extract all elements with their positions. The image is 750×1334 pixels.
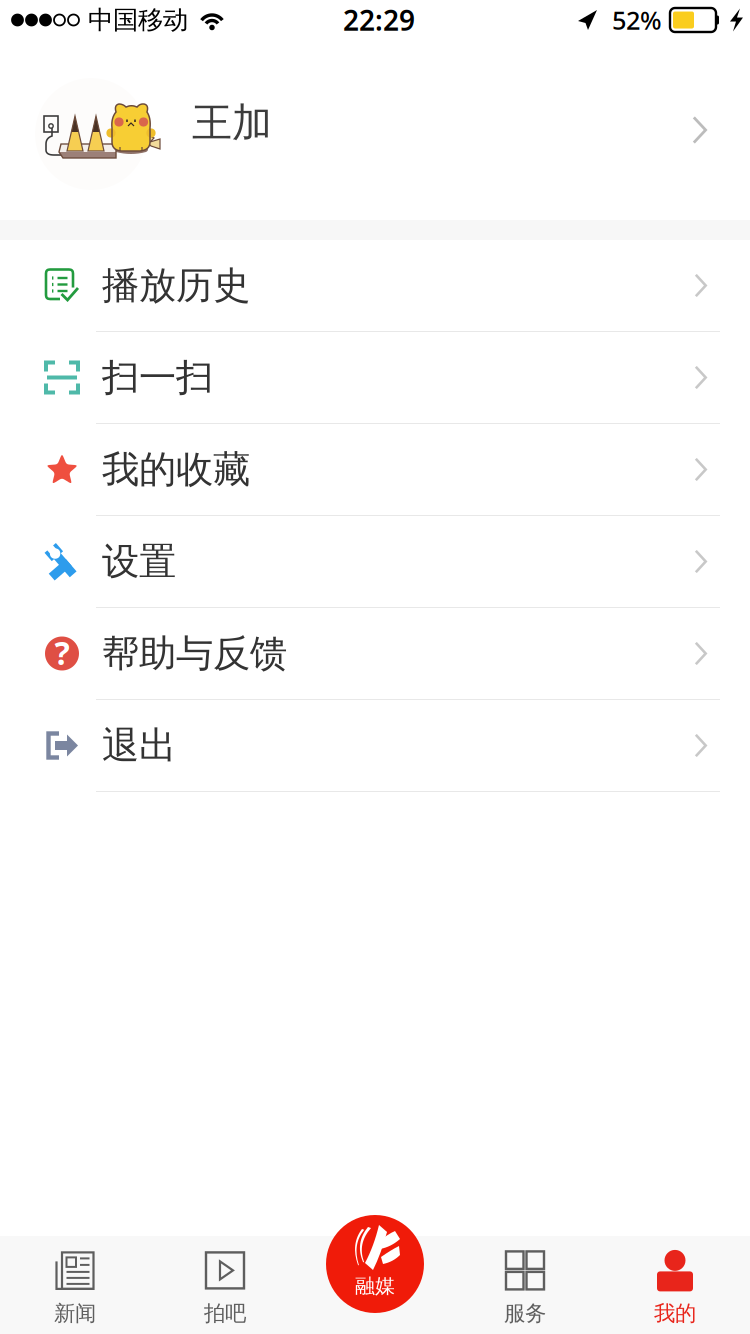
- staticText: 扫一扫: [102, 355, 213, 400]
- staticText: 王加: [192, 98, 272, 147]
- staticText: 融媒: [355, 1274, 395, 1298]
- button[interactable]: 新闻: [0, 1236, 150, 1334]
- button[interactable]: 退出: [0, 700, 750, 792]
- staticText: 中国移动: [88, 4, 188, 35]
- staticText: 设置: [102, 539, 176, 584]
- staticText: 52%: [612, 3, 662, 37]
- button[interactable]: ?: [0, 608, 750, 700]
- button[interactable]: 播放历史: [0, 240, 750, 332]
- button[interactable]: 王加: [0, 40, 750, 220]
- staticText: 拍吧: [204, 1300, 246, 1327]
- button[interactable]: 我的: [600, 1236, 750, 1334]
- staticText: 帮助与反馈: [102, 631, 287, 676]
- staticText: 22:29: [343, 1, 415, 39]
- button[interactable]: 设置: [0, 516, 750, 608]
- staticText: 播放历史: [102, 263, 250, 308]
- staticText: 新闻: [54, 1300, 96, 1327]
- staticText: ?: [54, 631, 69, 674]
- staticText: 我的收藏: [102, 447, 250, 492]
- button[interactable]: 扫一扫: [0, 332, 750, 424]
- staticText: 服务: [504, 1300, 546, 1327]
- button[interactable]: 拍吧: [150, 1236, 300, 1334]
- button[interactable]: 融媒: [319, 1208, 431, 1320]
- button[interactable]: 服务: [450, 1236, 600, 1334]
- button[interactable]: 我的收藏: [0, 424, 750, 516]
- staticText: 退出: [102, 723, 176, 768]
- staticText: 我的: [654, 1300, 696, 1327]
